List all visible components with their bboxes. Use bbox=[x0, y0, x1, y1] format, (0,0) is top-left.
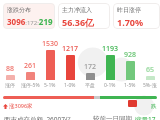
staticText: 涨3096家 bbox=[9, 102, 33, 110]
staticText: 1530 bbox=[42, 39, 59, 49]
button[interactable]: 65 bbox=[140, 65, 160, 80]
staticText: 涨停-5% bbox=[21, 82, 40, 89]
button[interactable]: Main net inflow bbox=[58, 3, 110, 29]
staticText: 1-5% bbox=[124, 82, 136, 89]
staticText: 65 bbox=[146, 65, 155, 75]
button[interactable]: 1217 bbox=[60, 44, 80, 80]
staticText: 两市成交总额 26007亿 bbox=[4, 115, 72, 120]
button[interactable]: 88 bbox=[0, 64, 20, 80]
staticText: 涨跌分布 bbox=[7, 6, 31, 14]
staticText: 1-0% bbox=[64, 82, 76, 89]
button[interactable]: 261 bbox=[20, 61, 40, 80]
button[interactable]: Rise fall distribution bbox=[3, 3, 55, 29]
button[interactable]: Alert bbox=[128, 100, 137, 107]
staticText: 928 bbox=[124, 50, 137, 60]
staticText: 1217 bbox=[62, 44, 79, 54]
staticText: 0-1% bbox=[104, 82, 116, 89]
staticText: 88 bbox=[6, 64, 15, 74]
staticText: 主力净流入 bbox=[62, 6, 92, 14]
button[interactable]: 928 bbox=[120, 50, 140, 80]
staticText: 1193 bbox=[102, 44, 119, 54]
staticText: 5%-涨 bbox=[143, 82, 157, 89]
staticText: 261 bbox=[24, 61, 37, 71]
staticText: 涨停 bbox=[5, 82, 15, 88]
button[interactable]: 172 bbox=[80, 62, 100, 80]
button[interactable] bbox=[3, 96, 157, 99]
staticText: 3096:172:2197 bbox=[7, 16, 55, 27]
button[interactable]: Yesterday limit up bbox=[113, 3, 160, 29]
staticText: 跌 bbox=[151, 103, 157, 110]
staticText: 平盘 bbox=[85, 82, 95, 88]
button[interactable]: 1530 bbox=[40, 39, 60, 80]
staticText: 172 bbox=[84, 62, 97, 72]
staticText: 昨日涨停 bbox=[117, 6, 141, 14]
staticText: 5-1% bbox=[44, 82, 56, 89]
staticText: 1.70% bbox=[117, 16, 144, 28]
staticText: 较前一日同期 bbox=[93, 115, 132, 120]
other: Rising bbox=[3, 104, 8, 109]
button[interactable]: 1193 bbox=[100, 44, 120, 80]
staticText: 56.36亿 bbox=[62, 16, 95, 28]
staticText: 缩量17 bbox=[135, 115, 156, 120]
